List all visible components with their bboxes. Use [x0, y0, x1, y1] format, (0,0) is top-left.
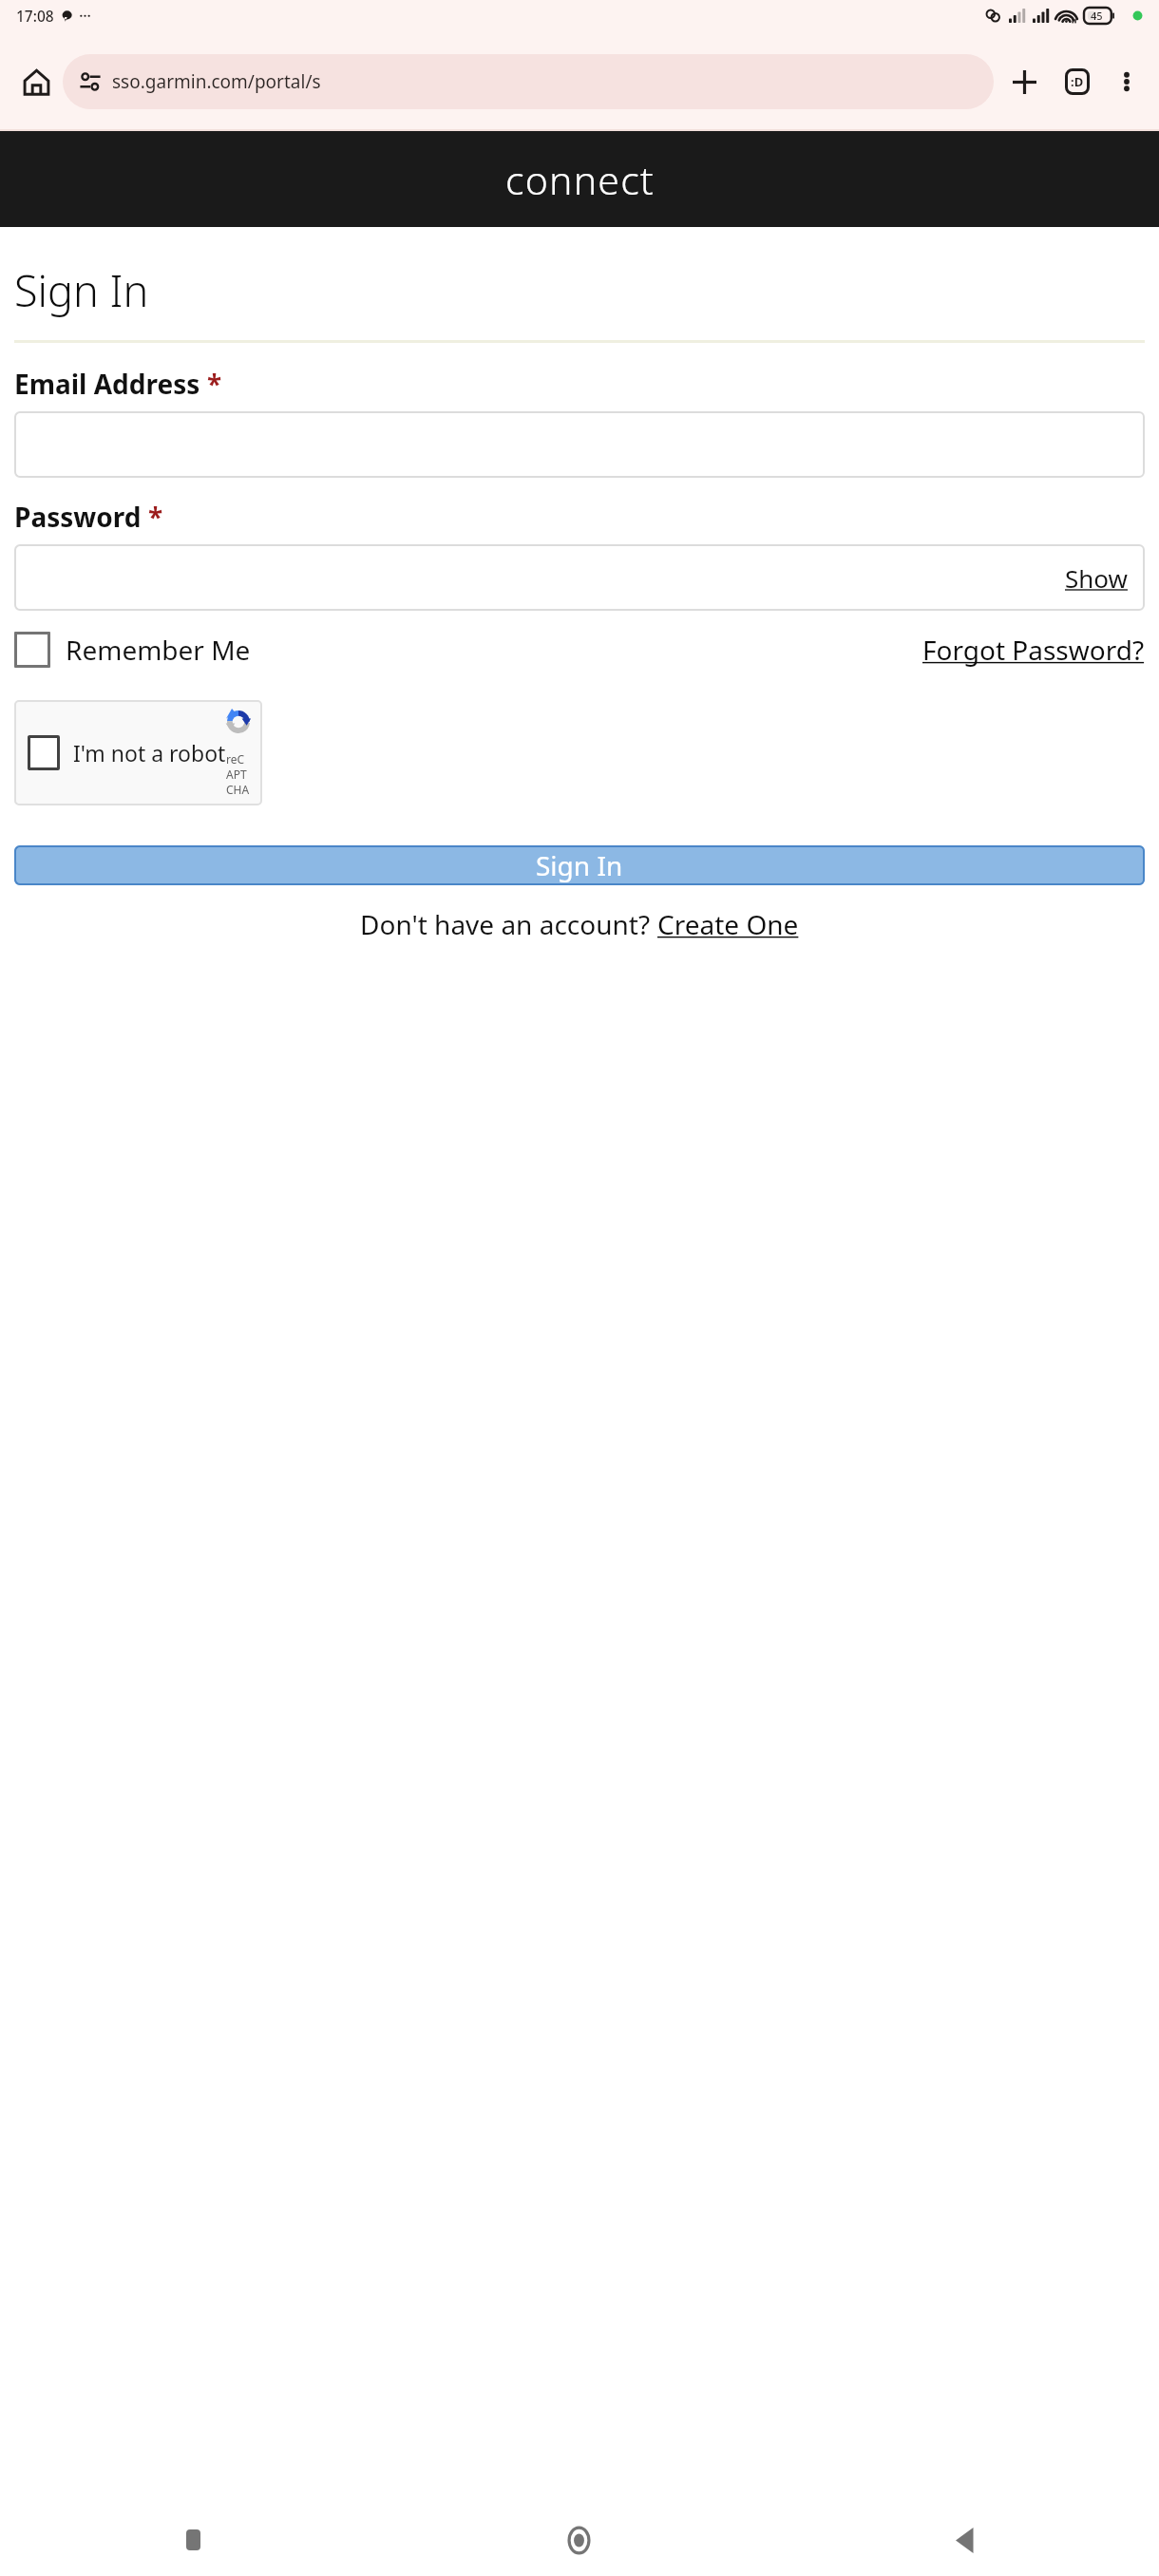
staticText: Email Address: [14, 366, 200, 402]
button[interactable]: Show: [1065, 561, 1128, 595]
staticText: Remember Me: [66, 632, 251, 668]
button[interactable]: New tab: [999, 57, 1049, 106]
button[interactable]: Back: [772, 2504, 1159, 2576]
staticText: Don't have an account?: [360, 906, 657, 942]
button[interactable]: Show: [14, 544, 1145, 611]
staticText: Sign In: [536, 847, 623, 883]
button[interactable]: Tabs: [1053, 57, 1102, 106]
button[interactable]: More options: [1104, 59, 1149, 104]
staticText: 17:08: [16, 6, 54, 26]
button[interactable]: sso.garmin.com/portal/s: [63, 54, 994, 109]
staticText: *: [207, 366, 222, 402]
staticText: Sign In: [14, 261, 149, 319]
staticText: :D: [1071, 73, 1084, 90]
staticText: Password: [14, 499, 142, 535]
button[interactable]: Create One: [657, 906, 799, 942]
button[interactable]: Remember Me: [14, 632, 251, 668]
staticText: reCAPTCHA: [226, 751, 251, 797]
staticText: sso.garmin.com/portal/s: [112, 69, 321, 94]
staticText: connect: [505, 153, 655, 206]
button[interactable]: Recent apps: [0, 2504, 386, 2576]
button[interactable]: Home: [386, 2504, 772, 2576]
staticText: *: [148, 499, 163, 535]
button[interactable]: Forgot Password?: [922, 632, 1145, 668]
staticText: I'm not a robot: [73, 738, 226, 767]
button[interactable]: I'm not a robot: [14, 700, 262, 805]
button[interactable]: Sign In: [14, 845, 1145, 885]
staticText: 45: [1091, 9, 1103, 23]
button[interactable]: [14, 411, 1145, 478]
button[interactable]: Home: [13, 59, 59, 104]
